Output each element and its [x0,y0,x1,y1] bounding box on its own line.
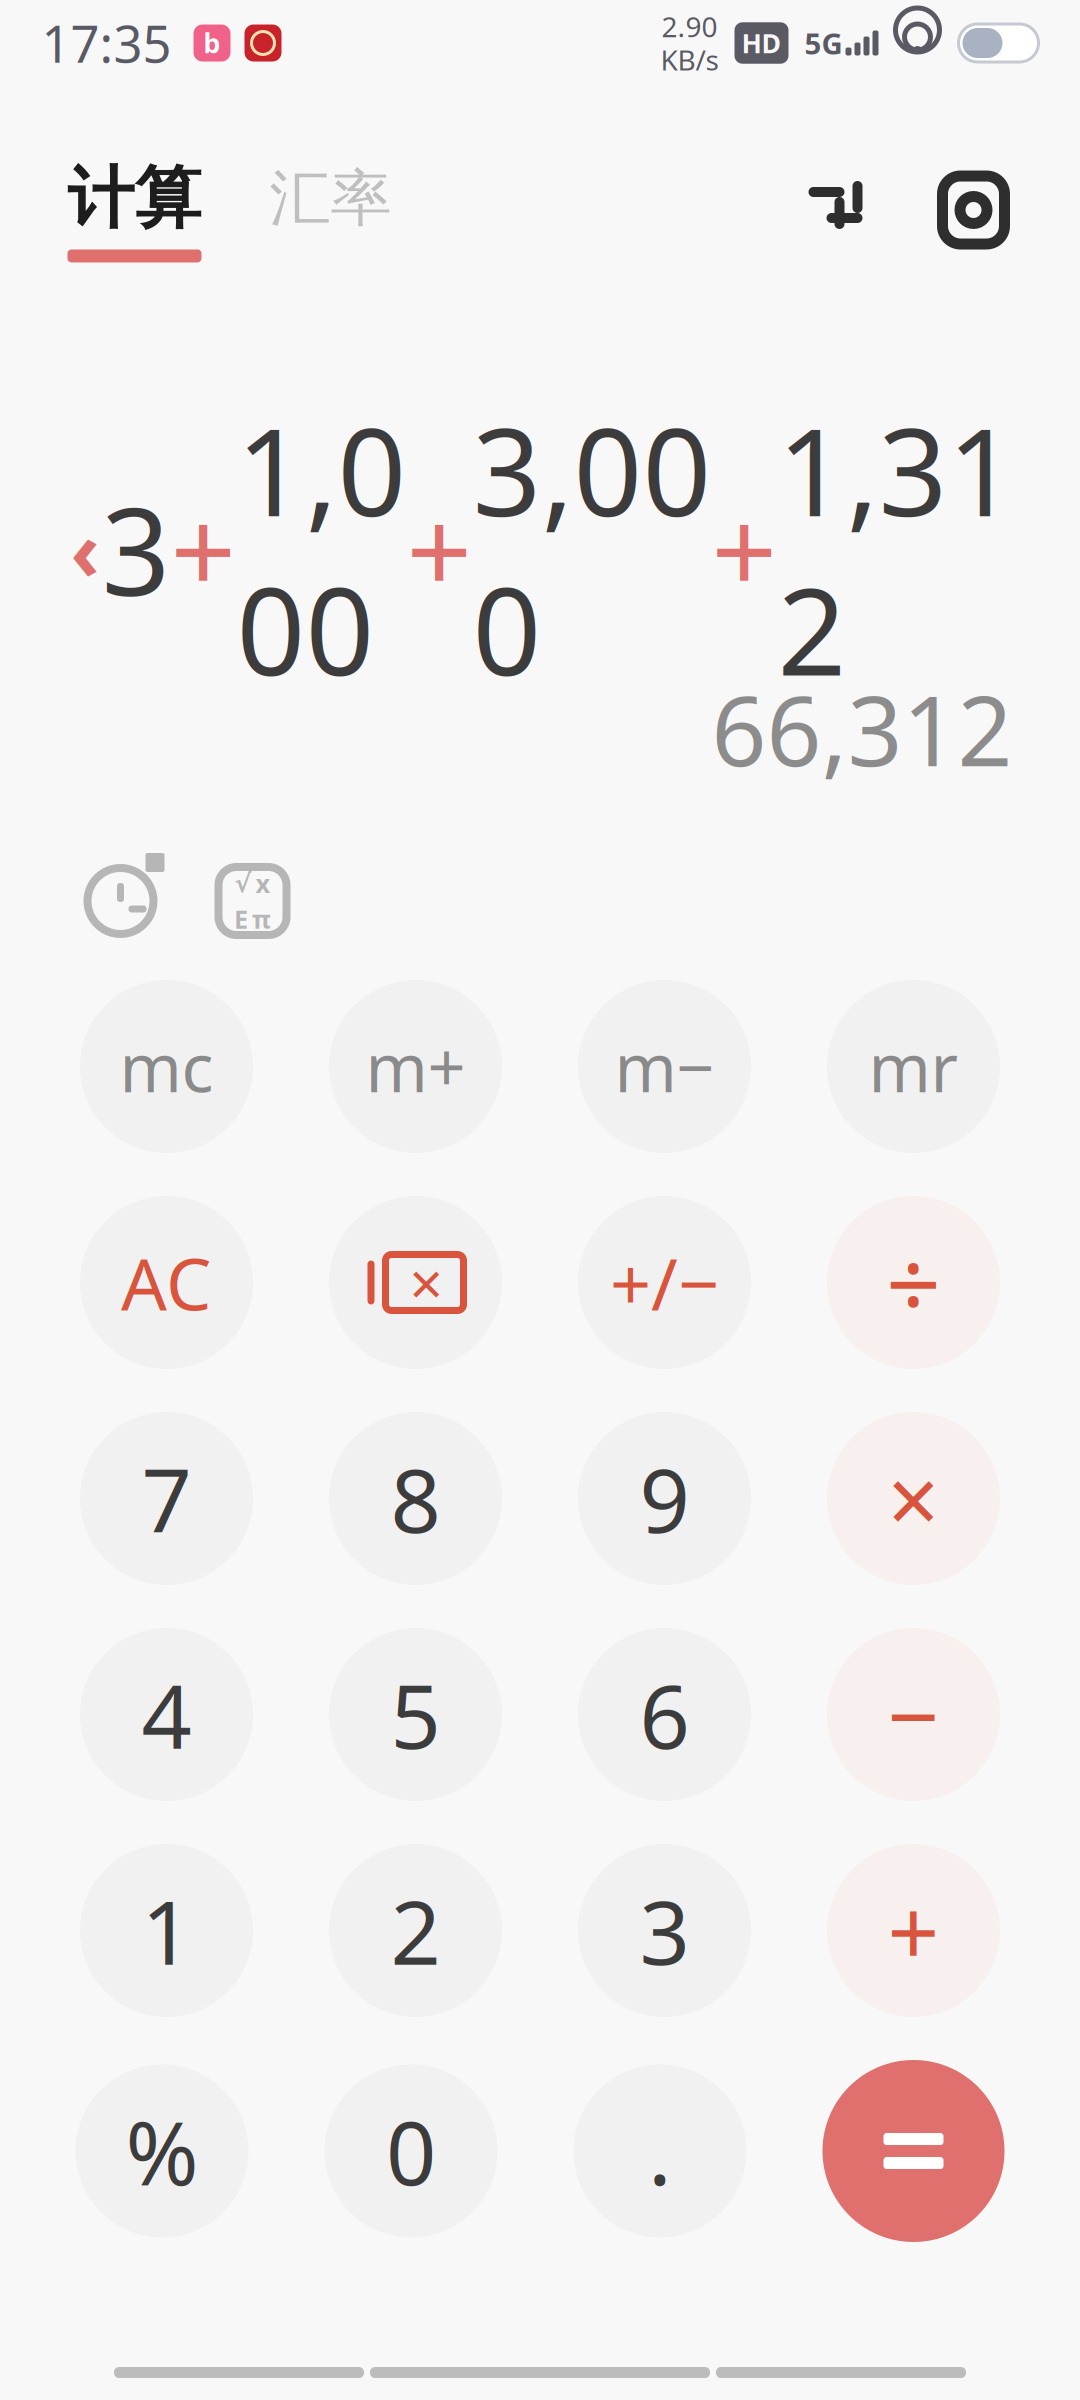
staticText: HD [741,25,781,61]
staticText: . [648,2093,672,2209]
staticText: 5G [804,23,842,62]
staticText: +/− [610,1235,719,1330]
staticText: 计算 [67,158,201,239]
button[interactable]: 1 [80,1844,253,2017]
button[interactable]: 9 [578,1412,751,1585]
button[interactable]: − [827,1628,1000,1801]
staticText: 汇率 [269,161,391,236]
staticText: − [887,1654,939,1775]
button[interactable]: 6 [578,1628,751,1801]
button[interactable]: mc [80,980,253,1153]
staticText: 8 [390,1440,440,1557]
button[interactable]: 3 [578,1844,751,2017]
button[interactable]: AC [80,1196,253,1369]
staticText: ÷ [886,1219,941,1346]
button[interactable]: 5 [329,1628,502,1801]
button[interactable]: History [75,856,165,946]
staticText: + [170,473,236,625]
staticText: + [887,1870,939,1991]
staticText: 3,000 [472,390,711,709]
staticText: x [255,866,270,900]
button[interactable]: m− [578,980,751,1153]
button[interactable]: Scientific mode [165,856,297,946]
staticText: 2 [390,1872,440,1989]
button[interactable]: Equals [822,2060,1004,2242]
button[interactable]: Settings [878,167,1016,253]
button[interactable]: × [827,1412,1000,1585]
staticText: 66,312 [711,665,1012,793]
button[interactable]: 8 [329,1412,502,1585]
staticText: × [409,1243,443,1321]
button[interactable]: Full screen [792,167,878,253]
button[interactable]: Backspace [329,1196,502,1369]
staticText: π [252,902,271,936]
button[interactable]: +/− [578,1196,751,1369]
staticText: 3 [639,1872,689,1989]
staticText: 3 [101,470,170,629]
staticText: 1,000 [236,390,406,709]
staticText: + [406,473,472,625]
staticText: b [203,25,220,61]
button[interactable]: 汇率 [205,161,391,259]
button[interactable]: ÷ [827,1196,1000,1369]
staticText: 2.90 [661,8,717,45]
staticText: m− [614,1022,714,1111]
staticText: % [125,2093,198,2209]
staticText: ‹ [70,496,99,602]
staticText: m+ [365,1022,465,1111]
button[interactable]: 0 [324,2064,497,2237]
staticText: 0 [386,2093,436,2209]
staticText: √ [234,869,251,898]
button[interactable]: 7 [80,1412,253,1585]
staticText: mr [868,1022,958,1111]
staticText: E [234,902,248,936]
staticText: 1,312 [777,390,1016,709]
staticText: 4 [141,1656,191,1773]
staticText: + [711,473,777,625]
staticText: × [887,1438,939,1559]
button[interactable]: 2 [329,1844,502,2017]
staticText: 1 [141,1872,191,1989]
staticText: mc [119,1022,213,1111]
button[interactable]: 计算 [63,158,205,262]
button[interactable]: mr [827,980,1000,1153]
button[interactable]: 4 [80,1628,253,1801]
staticText: 7 [141,1440,191,1557]
button[interactable]: m+ [329,980,502,1153]
staticText: 6 [639,1656,689,1773]
button[interactable]: % [75,2064,248,2237]
button[interactable]: . [573,2064,746,2237]
staticText: 5 [390,1656,440,1773]
button[interactable]: + [827,1844,1000,2017]
staticText: KB/s [660,41,718,78]
staticText: 17:35 [41,9,171,77]
staticText: 9 [639,1440,689,1557]
staticText: AC [121,1235,212,1330]
